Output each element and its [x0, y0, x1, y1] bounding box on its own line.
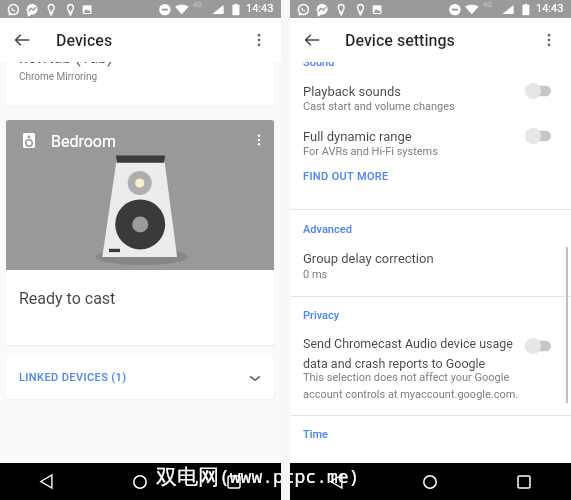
staticText: 双电网: [156, 464, 219, 490]
button[interactable]: Home: [93, 463, 187, 500]
button[interactable]: LINKED DEVICES (1): [6, 356, 274, 399]
button[interactable]: Back: [296, 24, 328, 56]
staticText: Chrome Mirroring: [19, 71, 98, 83]
staticText: 4G: [193, 1, 202, 9]
staticText: Devices: [56, 31, 113, 50]
button[interactable]: More options: [533, 24, 565, 56]
button[interactable]: Back: [290, 463, 383, 500]
staticText: Full dynamic range: [303, 129, 412, 144]
staticText: Ready to cast: [19, 289, 116, 308]
other: Toggle: [511, 122, 565, 150]
button[interactable]: Recents: [477, 463, 571, 500]
staticText: (www.pcpc.me): [219, 464, 360, 489]
other: Toggle: [511, 77, 565, 105]
staticText: LINKED DEVICES (1): [19, 371, 127, 384]
button[interactable]: Ready to cast: [6, 270, 274, 345]
button[interactable]: Recents: [187, 463, 281, 500]
staticText: Device settings: [345, 31, 455, 50]
button[interactable]: More options: [243, 24, 275, 56]
button[interactable]: newtab (Tab): [6, 62, 274, 106]
staticText: 14:43: [536, 2, 564, 15]
button[interactable]: Back: [6, 24, 38, 56]
staticText: 0 ms: [303, 268, 328, 281]
button[interactable]: Playback sounds: [290, 72, 571, 114]
button[interactable]: Back: [0, 463, 93, 500]
staticText: For AVRs and Hi-Fi systems: [303, 145, 438, 158]
button[interactable]: Home: [383, 463, 477, 500]
staticText: 4G: [483, 1, 492, 9]
staticText: Time: [303, 428, 328, 441]
staticText: Send Chromecast Audio device usage data …: [303, 336, 525, 371]
staticText: Sound: [303, 62, 335, 69]
button[interactable]: Group delay correction: [290, 239, 571, 281]
staticText: Cast start and volume changes: [303, 100, 455, 113]
button[interactable]: FIND OUT MORE: [297, 164, 397, 188]
staticText: Privacy: [303, 309, 340, 322]
staticText: This selection does not affect your Goog…: [303, 371, 527, 400]
staticText: Group delay correction: [303, 251, 434, 266]
button[interactable]: Full dynamic range: [290, 117, 571, 159]
button[interactable]: More options: [246, 127, 272, 153]
staticText: FIND OUT MORE: [303, 170, 389, 183]
other: Toggle usage data sharing: [511, 331, 565, 361]
staticText: newtab (Tab): [19, 62, 113, 67]
staticText: Bedroom: [51, 132, 117, 151]
staticText: Advanced: [303, 223, 352, 236]
staticText: 14:43: [246, 2, 274, 15]
staticText: Playback sounds: [303, 84, 401, 99]
button[interactable]: Send Chromecast Audio device usage data …: [290, 336, 571, 408]
